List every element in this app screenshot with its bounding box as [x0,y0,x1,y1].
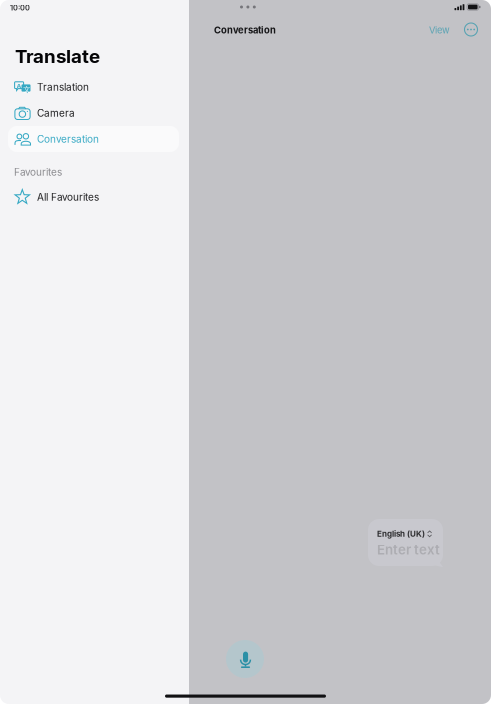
staticText: Translation [37,81,89,93]
button[interactable]: All Favourites [8,184,179,210]
staticText: Favourites [14,166,62,178]
button[interactable]: More options [460,18,482,40]
button[interactable]: View [425,20,454,40]
button[interactable]: Camera [8,100,179,126]
staticText: 文 [23,85,30,94]
staticText: Conversation [37,133,99,145]
staticText: View [429,24,450,36]
staticText: All Favourites [37,191,99,203]
staticText: Camera [37,107,75,119]
button[interactable]: Record [226,640,264,678]
staticText: Translate [15,45,100,68]
button[interactable]: Conversation [8,126,179,152]
staticText: A [16,82,21,90]
staticText: Enter text [377,542,440,558]
staticText: English (UK) [377,529,425,539]
staticText: 10:00 [10,3,30,12]
button[interactable]: A [8,74,179,100]
staticText: Conversation [214,24,276,36]
